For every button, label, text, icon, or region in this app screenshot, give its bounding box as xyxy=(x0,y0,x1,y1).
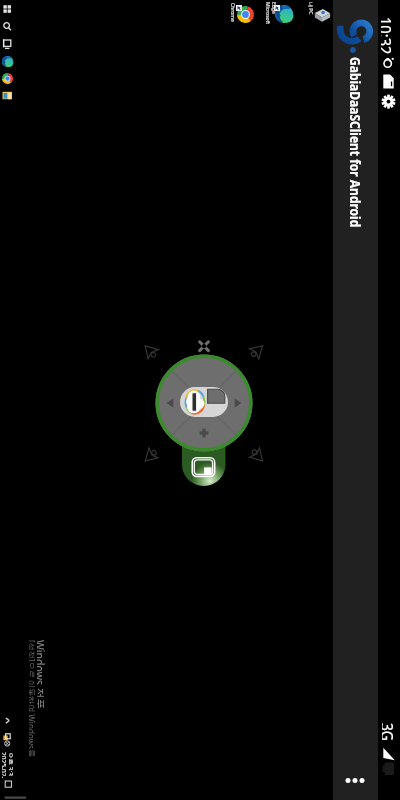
button[interactable]: More options xyxy=(341,766,369,794)
staticText: Edge xyxy=(271,2,277,28)
staticText: 3G xyxy=(382,723,398,749)
staticText: 오후 3:32 xyxy=(9,752,15,776)
button[interactable]: Remote session xyxy=(180,387,228,417)
staticText: 내 PC xyxy=(307,2,314,24)
button[interactable]: Virtual trackpad xyxy=(155,354,253,452)
staticText: [설정]으로 이동하여 Windows를 정품 인증합니다. xyxy=(29,640,38,757)
button[interactable]: Picture in picture xyxy=(182,448,226,486)
staticText: Windows 정품 인증 xyxy=(37,640,48,710)
staticText: GabiaDaaSClient for Android xyxy=(348,57,366,265)
staticText: Chrome xyxy=(229,3,236,29)
staticText: 10:32 xyxy=(381,17,397,58)
staticText: Microsoft xyxy=(265,2,271,28)
staticText: 2025-02-05 xyxy=(2,752,8,778)
